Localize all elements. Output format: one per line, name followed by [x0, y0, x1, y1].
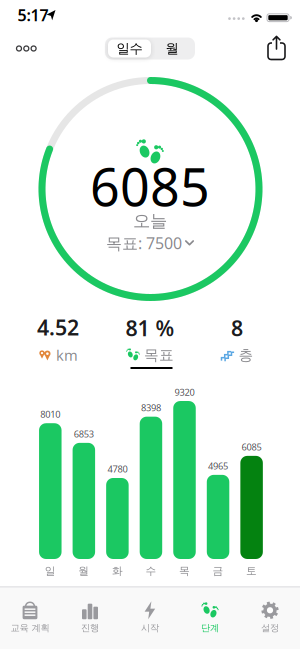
staticText: 6085	[90, 151, 210, 221]
button[interactable]: 일수	[108, 39, 151, 57]
button[interactable]: 단계	[180, 589, 240, 645]
staticText: 6085	[242, 441, 262, 453]
staticText: 목	[179, 564, 190, 577]
staticText: 4.52	[37, 313, 79, 341]
button[interactable]: 진행	[60, 589, 120, 645]
staticText: 수	[145, 564, 156, 577]
button[interactable]: 시작	[120, 589, 180, 645]
staticText: 오늘	[133, 210, 167, 232]
button[interactable]: 8	[220, 314, 253, 364]
staticText: 설정	[261, 622, 279, 634]
button[interactable]: Share	[263, 33, 289, 61]
staticText: 진행	[81, 622, 99, 634]
staticText: 일	[45, 564, 56, 577]
staticText: 4965	[208, 460, 228, 472]
staticText: 81 %	[125, 314, 174, 342]
staticText: km	[56, 345, 78, 365]
staticText: 8	[231, 314, 243, 342]
button[interactable]: 목표: 7500	[106, 232, 194, 254]
staticText: 교육 계획	[10, 622, 49, 634]
staticText: 층	[238, 346, 253, 364]
staticText: 목표: 7500	[106, 232, 182, 254]
button[interactable]: 설정	[240, 589, 300, 645]
staticText: 9320	[174, 386, 194, 398]
staticText: 월	[78, 564, 89, 577]
staticText: 8010	[40, 408, 60, 420]
staticText: 금	[213, 564, 224, 577]
staticText: 일수	[116, 40, 142, 57]
staticText: 5:17	[17, 4, 48, 26]
staticText: 토	[246, 564, 257, 577]
button[interactable]: 교육 계획	[0, 589, 60, 645]
staticText: 4780	[107, 463, 127, 475]
button[interactable]: More	[15, 40, 38, 56]
staticText: 단계	[201, 622, 219, 634]
staticText: 화	[112, 564, 123, 577]
staticText: 6853	[74, 428, 94, 440]
button[interactable]: 81 %	[125, 314, 174, 364]
staticText: 시작	[141, 622, 159, 634]
button[interactable]: 4.52	[37, 313, 79, 365]
staticText: 목표	[144, 346, 174, 364]
staticText: 8398	[141, 401, 161, 414]
button[interactable]: 월	[152, 39, 192, 57]
staticText: 월	[165, 40, 178, 57]
